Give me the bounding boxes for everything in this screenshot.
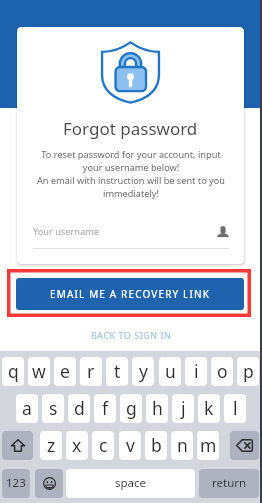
staticText: Your username xyxy=(33,225,217,238)
button[interactable]: r xyxy=(80,357,102,386)
staticText: n xyxy=(177,433,188,457)
staticText: return xyxy=(212,475,247,491)
button[interactable]: u xyxy=(159,357,181,386)
staticText: space xyxy=(115,475,147,491)
button[interactable]: a xyxy=(16,394,38,423)
staticText: y xyxy=(139,359,148,383)
staticText: g xyxy=(126,396,137,420)
staticText: j xyxy=(181,396,186,420)
button[interactable]: e xyxy=(54,357,76,386)
staticText: 123 xyxy=(6,475,26,491)
button[interactable]: v xyxy=(119,431,141,460)
staticText: r xyxy=(87,359,95,383)
staticText: x xyxy=(72,433,82,457)
staticText: t xyxy=(114,359,121,383)
staticText: b xyxy=(151,433,162,457)
button[interactable]: h xyxy=(146,394,168,423)
staticText: To reset password for your account, inpu… xyxy=(33,148,229,200)
button[interactable]: c xyxy=(92,431,114,460)
button[interactable]: p xyxy=(237,357,259,386)
staticText: h xyxy=(152,396,163,420)
staticText: z xyxy=(47,433,56,457)
staticText: u xyxy=(165,359,176,383)
staticText: Forgot password xyxy=(63,117,198,140)
staticText: i xyxy=(194,359,199,383)
button[interactable]: t xyxy=(106,357,128,386)
staticText: EMAIL ME A RECOVERY LINK xyxy=(50,287,211,301)
button[interactable]: emoji xyxy=(35,469,63,498)
staticText: v xyxy=(126,433,135,457)
button[interactable]: n xyxy=(171,431,193,460)
button[interactable]: m xyxy=(197,431,219,460)
staticText: q xyxy=(8,359,19,383)
staticText: f xyxy=(102,396,109,420)
staticText: c xyxy=(99,433,108,457)
button[interactable]: z xyxy=(40,431,62,460)
button[interactable]: 123 xyxy=(2,469,30,498)
button[interactable]: delete xyxy=(230,431,259,460)
button[interactable]: j xyxy=(172,394,194,423)
button[interactable]: q xyxy=(2,357,24,386)
button[interactable]: y xyxy=(132,357,154,386)
button[interactable]: s xyxy=(42,394,64,423)
button[interactable]: o xyxy=(211,357,233,386)
staticText: l xyxy=(233,396,238,420)
button[interactable]: shift xyxy=(2,431,33,460)
button[interactable]: l xyxy=(224,394,246,423)
staticText: d xyxy=(74,396,85,420)
staticText: k xyxy=(204,396,214,420)
staticText: m xyxy=(200,433,217,457)
button[interactable]: i xyxy=(185,357,207,386)
button[interactable]: d xyxy=(68,394,90,423)
staticText: w xyxy=(32,359,46,383)
staticText: s xyxy=(49,396,58,420)
button[interactable]: g xyxy=(120,394,142,423)
button[interactable]: return xyxy=(199,469,259,498)
button[interactable]: b xyxy=(145,431,167,460)
staticText: a xyxy=(22,396,32,420)
staticText: e xyxy=(60,359,70,383)
button[interactable]: w xyxy=(28,357,50,386)
button[interactable]: f xyxy=(94,394,116,423)
staticText: BACK TO SIGN IN xyxy=(91,329,172,341)
button[interactable]: BACK TO SIGN IN xyxy=(0,326,262,344)
button[interactable]: EMAIL ME A RECOVERY LINK xyxy=(16,278,244,310)
button[interactable]: x xyxy=(66,431,88,460)
button[interactable]: space xyxy=(66,469,195,498)
button[interactable]: k xyxy=(198,394,220,423)
staticText: o xyxy=(217,359,228,383)
staticText: p xyxy=(243,359,254,383)
